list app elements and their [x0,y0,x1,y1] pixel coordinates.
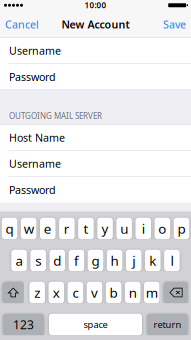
staticText: b [110,284,118,301]
button[interactable]: r [59,218,75,239]
staticText: Password [9,183,56,197]
staticText: i [142,220,145,237]
button[interactable]: j [126,250,141,271]
staticText: x [53,284,60,301]
button[interactable]: m [144,282,160,303]
staticText: p [177,220,185,237]
button[interactable]: Password [0,177,191,203]
button[interactable]: e [40,218,55,239]
button[interactable]: v [87,282,102,303]
button[interactable]: Cancel [0,11,48,37]
button[interactable]: Save [151,11,191,37]
staticText: Username [9,156,61,171]
staticText: a [16,252,23,269]
button[interactable]: s [30,250,46,271]
staticText: s [35,252,41,269]
staticText: e [44,220,52,237]
staticText: u [120,220,128,237]
staticText: New Account [61,17,129,31]
staticText: f [74,252,79,269]
button[interactable]: i [135,218,151,239]
button[interactable]: Host Name [0,125,191,151]
button[interactable]: c [68,282,83,303]
button[interactable]: Shift [2,282,24,303]
staticText: r [64,220,70,237]
button[interactable]: z [29,282,45,303]
staticText: w [24,220,34,237]
staticText: Host Name [9,130,65,145]
button[interactable]: Password [0,64,191,90]
staticText: z [34,284,40,301]
button[interactable]: x [49,282,64,303]
staticText: OUTGOING MAIL SERVER [9,111,102,121]
button[interactable]: o [155,218,170,239]
staticText: q [5,220,13,237]
button[interactable]: l [164,250,180,271]
button[interactable]: k [145,250,160,271]
button[interactable]: q [2,218,17,239]
button[interactable]: b [106,282,121,303]
button[interactable]: Username [0,151,191,177]
button[interactable]: h [107,250,122,271]
button[interactable]: 123 [3,314,44,335]
staticText: j [132,252,135,269]
staticText: 10:00 [84,0,106,10]
staticText: k [149,252,156,269]
button[interactable]: u [116,218,132,239]
staticText: Username [9,43,61,58]
staticText: c [72,284,78,301]
button[interactable]: t [78,218,94,239]
button[interactable]: Delete [164,282,189,303]
staticText: t [83,220,88,237]
button[interactable]: Username [0,38,191,64]
button[interactable]: w [21,218,36,239]
staticText: return [153,318,181,331]
staticText: space [83,318,107,331]
button[interactable]: return [147,314,188,335]
staticText: o [158,220,166,237]
staticText: l [170,252,173,269]
staticText: y [101,220,108,237]
staticText: d [53,252,61,269]
staticText: m [146,284,158,301]
staticText: h [111,252,119,269]
button[interactable]: g [88,250,103,271]
staticText: Password [9,70,56,84]
staticText: n [129,284,137,301]
staticText: Cancel [5,17,39,31]
button[interactable]: f [69,250,84,271]
staticText: g [91,252,99,269]
button[interactable]: d [49,250,65,271]
staticText: v [91,284,98,301]
staticText: 123 [13,316,34,332]
button[interactable]: p [174,218,189,239]
button[interactable]: y [97,218,113,239]
staticText: Save [163,17,186,31]
button[interactable]: a [11,250,27,271]
button[interactable]: n [125,282,140,303]
button[interactable]: space [49,314,142,335]
